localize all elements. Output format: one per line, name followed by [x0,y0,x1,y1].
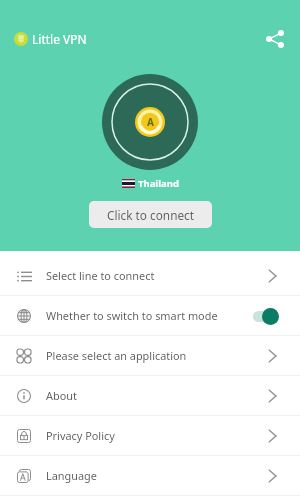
button[interactable]: Privacy Policy [0,416,300,455]
button[interactable]: Little VPN [14,31,87,47]
staticText: About [46,388,77,403]
staticText: Privacy Policy [46,428,115,443]
staticText: Thailand [138,177,179,190]
button[interactable]: Whether to switch to smart mode [0,296,300,335]
other: Open [266,428,282,444]
button[interactable]: Smart mode toggle [253,307,282,325]
staticText: Little VPN [32,31,87,47]
other: Open [266,268,282,284]
staticText: A [147,115,154,129]
other: Open [266,388,282,404]
staticText: Select line to connect [46,268,155,283]
button[interactable]: Select line to connect [0,251,300,295]
other: Open [266,348,282,364]
button[interactable]: Share [264,28,286,50]
button[interactable]: Language [0,456,300,495]
button[interactable]: Please select an application [0,336,300,375]
staticText: Please select an application [46,348,187,363]
staticText: Whether to switch to smart mode [46,308,218,323]
button[interactable]: Connect [102,74,198,170]
staticText: Language [46,468,97,483]
button[interactable]: Click to connect [89,201,212,228]
button[interactable]: About [0,376,300,415]
other: Open [266,468,282,484]
staticText: Click to connect [107,207,194,223]
